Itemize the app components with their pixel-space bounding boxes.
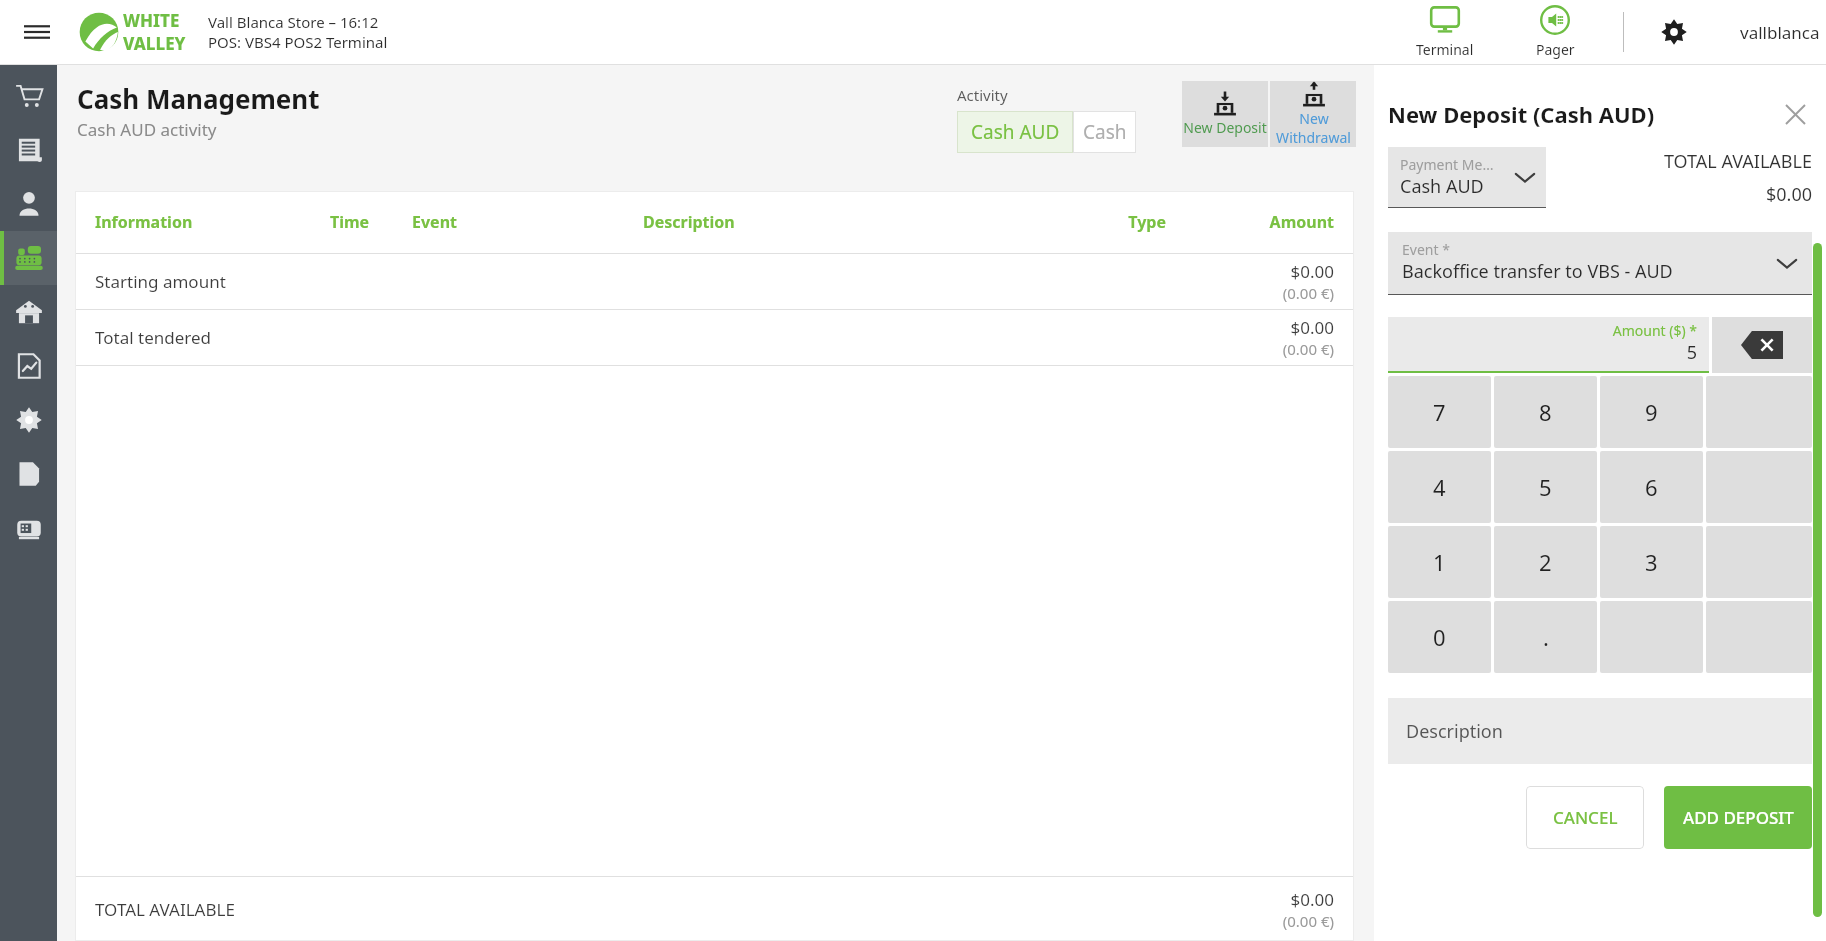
button[interactable]: Pager (1509, 0, 1601, 64)
staticText: Time (330, 211, 412, 233)
staticText: POS: VBS4 POS2 Terminal (208, 32, 388, 52)
button[interactable]: Event * (1388, 232, 1812, 294)
staticText: 3 (1645, 547, 1658, 577)
staticText: New Deposit (1183, 118, 1267, 137)
button[interactable]: 1 (1388, 526, 1491, 598)
button[interactable]: Nav item 4 (0, 285, 57, 339)
button[interactable]: Starting amount (95, 254, 1334, 309)
staticText: 7 (1433, 397, 1446, 427)
staticText: TOTAL AVAILABLE (95, 898, 1282, 921)
staticText: ADD DEPOSIT (1683, 806, 1794, 829)
staticText: Total tendered (95, 326, 1282, 349)
staticText: Event * (1402, 240, 1450, 259)
staticText: New (1299, 109, 1329, 128)
staticText: 5 (1539, 472, 1552, 502)
staticText: VALLEY (123, 32, 186, 55)
staticText: 5 (1686, 340, 1697, 365)
staticText: Cash Management (77, 81, 320, 116)
button[interactable]: 0 (1388, 601, 1491, 673)
staticText: $0.00 (1290, 888, 1334, 911)
button[interactable]: Nav item 7 (0, 447, 57, 501)
button[interactable]: Backspace (1712, 317, 1812, 373)
staticText: Vall Blanca Store – 16:12 (208, 12, 379, 32)
staticText: $0.00 (1290, 316, 1334, 339)
staticText: (0.00 €) (1282, 911, 1334, 931)
staticText: 2 (1539, 547, 1552, 577)
staticText: $0.00 (1290, 260, 1334, 283)
staticText: 4 (1433, 472, 1446, 502)
staticText: Cash (1083, 119, 1127, 145)
button[interactable]: New Deposit (1182, 81, 1268, 147)
button[interactable]: Nav item 5 (0, 339, 57, 393)
staticText: Starting amount (95, 270, 1282, 293)
button[interactable]: 3 (1600, 526, 1703, 598)
button[interactable]: 7 (1388, 376, 1491, 448)
staticText: 0 (1433, 622, 1446, 652)
staticText: WHITE (123, 9, 180, 32)
button[interactable]: Close (1778, 97, 1812, 131)
staticText: CANCEL (1553, 806, 1618, 829)
staticText: Description (643, 211, 1036, 233)
staticText: Cash AUD (971, 119, 1060, 145)
staticText: 9 (1645, 397, 1658, 427)
staticText: Event (412, 211, 643, 233)
button[interactable]: Nav item 8 (0, 501, 57, 555)
staticText: Cash AUD activity (77, 118, 217, 141)
button[interactable]: Terminal (1391, 0, 1499, 64)
button[interactable]: ADD DEPOSIT (1664, 786, 1812, 849)
button[interactable]: 5 (1494, 451, 1597, 523)
button[interactable]: 2 (1494, 526, 1597, 598)
staticText: 8 (1539, 397, 1552, 427)
button[interactable]: Cash (1073, 111, 1136, 153)
staticText: (0.00 €) (1282, 283, 1334, 303)
button[interactable]: Total tendered (95, 310, 1334, 365)
button[interactable]: Nav item 1 (0, 123, 57, 177)
button[interactable]: Cash AUD (957, 111, 1073, 153)
staticText: Amount (1166, 211, 1334, 233)
button[interactable]: Menu (14, 9, 60, 55)
staticText: Backoffice transfer to VBS - AUD (1402, 259, 1673, 284)
button[interactable]: Nav item 3 (0, 231, 57, 285)
button[interactable]: . (1494, 601, 1597, 673)
button[interactable]: 8 (1494, 376, 1597, 448)
button[interactable]: 6 (1600, 451, 1703, 523)
button[interactable]: Nav item 6 (0, 393, 57, 447)
staticText: Information (95, 211, 330, 233)
staticText: 6 (1645, 472, 1658, 502)
staticText: New Deposit (Cash AUD) (1388, 99, 1778, 129)
staticText: Withdrawal (1276, 128, 1351, 147)
button[interactable]: Payment Me… (1388, 147, 1546, 207)
staticText: Payment Me… (1400, 155, 1494, 174)
staticText: Cash AUD (1400, 174, 1484, 199)
staticText: Activity (957, 85, 1008, 105)
button[interactable]: Amount ($) * (1388, 317, 1709, 371)
button[interactable]: New (1270, 81, 1356, 147)
button[interactable]: 4 (1388, 451, 1491, 523)
staticText: Terminal (1416, 40, 1474, 59)
staticText: Description (1406, 719, 1503, 744)
button[interactable]: CANCEL (1526, 786, 1644, 849)
staticText: TOTAL AVAILABLE (1663, 149, 1812, 174)
staticText: Pager (1536, 40, 1575, 59)
button[interactable]: Nav item 2 (0, 177, 57, 231)
staticText: vallblanca (1740, 21, 1820, 44)
staticText: Type (1036, 211, 1166, 233)
staticText: . (1543, 622, 1549, 652)
staticText: 1 (1433, 547, 1446, 577)
button[interactable]: 9 (1600, 376, 1703, 448)
staticText: Amount ($) * (1612, 321, 1697, 340)
button[interactable]: Settings (1652, 10, 1696, 54)
button[interactable]: Nav item 0 (0, 69, 57, 123)
staticText: (0.00 €) (1282, 339, 1334, 359)
staticText: $0.00 (1765, 182, 1812, 207)
button[interactable]: Description (1388, 698, 1812, 764)
